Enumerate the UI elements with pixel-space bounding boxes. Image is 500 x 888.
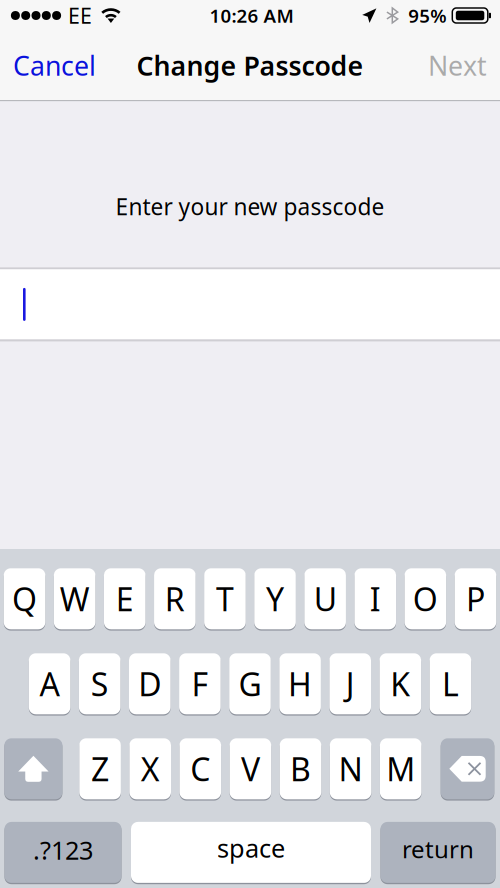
staticText: V — [241, 748, 260, 790]
staticText: W — [60, 578, 90, 620]
staticText: Cancel — [13, 48, 96, 83]
button[interactable]: P — [455, 567, 496, 631]
button[interactable]: N — [330, 737, 371, 801]
staticText: A — [40, 663, 60, 705]
staticText: 95% — [408, 3, 446, 28]
staticText: return — [402, 833, 474, 865]
button[interactable]: C — [179, 737, 221, 801]
staticText: L — [442, 663, 459, 705]
button[interactable]: H — [279, 652, 321, 716]
button[interactable]: Q — [4, 567, 45, 631]
staticText: .?123 — [33, 833, 93, 867]
staticText: R — [165, 578, 185, 620]
button[interactable]: space — [131, 821, 371, 884]
staticText: C — [190, 748, 210, 790]
button[interactable]: Y — [254, 567, 296, 631]
staticText: U — [314, 578, 337, 620]
staticText: Enter your new passcode — [115, 191, 384, 221]
button[interactable]: D — [129, 652, 171, 716]
staticText: G — [238, 663, 261, 705]
staticText: F — [191, 663, 208, 705]
staticText: X — [141, 748, 160, 790]
button[interactable]: return — [380, 821, 495, 884]
button[interactable]: .?123 — [4, 821, 121, 884]
button[interactable]: F — [179, 652, 221, 716]
staticText: Next — [428, 48, 487, 83]
button[interactable]: V — [230, 737, 271, 801]
staticText: K — [390, 663, 410, 705]
button[interactable]: J — [329, 652, 371, 716]
button[interactable]: R — [154, 567, 196, 631]
button[interactable]: Cancel — [0, 31, 109, 100]
button[interactable]: Z — [79, 737, 121, 801]
button[interactable]: T — [204, 567, 246, 631]
staticText: Change Passcode — [136, 48, 363, 83]
button[interactable]: O — [405, 567, 446, 631]
button[interactable]: I — [354, 567, 396, 631]
staticText: N — [339, 748, 363, 790]
button[interactable]: U — [304, 567, 346, 631]
staticText: D — [138, 663, 161, 705]
staticText: P — [466, 578, 485, 620]
staticText: Y — [266, 578, 284, 620]
button[interactable]: W — [54, 567, 95, 631]
staticText: T — [216, 578, 234, 620]
button[interactable]: B — [280, 737, 321, 801]
button[interactable]: K — [379, 652, 421, 716]
staticText: B — [290, 748, 311, 790]
button[interactable]: X — [129, 737, 171, 801]
staticText: EE — [68, 1, 92, 30]
button[interactable]: S — [79, 652, 120, 716]
staticText: S — [91, 663, 109, 705]
staticText: E — [116, 578, 134, 620]
staticText: Z — [91, 748, 109, 790]
staticText: H — [288, 663, 312, 705]
staticText: O — [413, 578, 438, 620]
button[interactable]: Next — [415, 31, 500, 100]
button[interactable]: L — [430, 652, 471, 716]
staticText: J — [346, 663, 355, 705]
staticText: 10:26 AM — [209, 3, 293, 28]
staticText: Q — [12, 578, 37, 620]
button[interactable]: M — [380, 737, 421, 801]
staticText: M — [386, 748, 415, 790]
button[interactable]: G — [229, 652, 271, 716]
button[interactable]: E — [104, 567, 145, 631]
button[interactable]: Shift — [4, 737, 62, 801]
staticText: I — [370, 578, 381, 620]
button[interactable]: Delete — [441, 737, 494, 801]
button[interactable]: A — [29, 652, 70, 716]
staticText: space — [217, 831, 285, 865]
